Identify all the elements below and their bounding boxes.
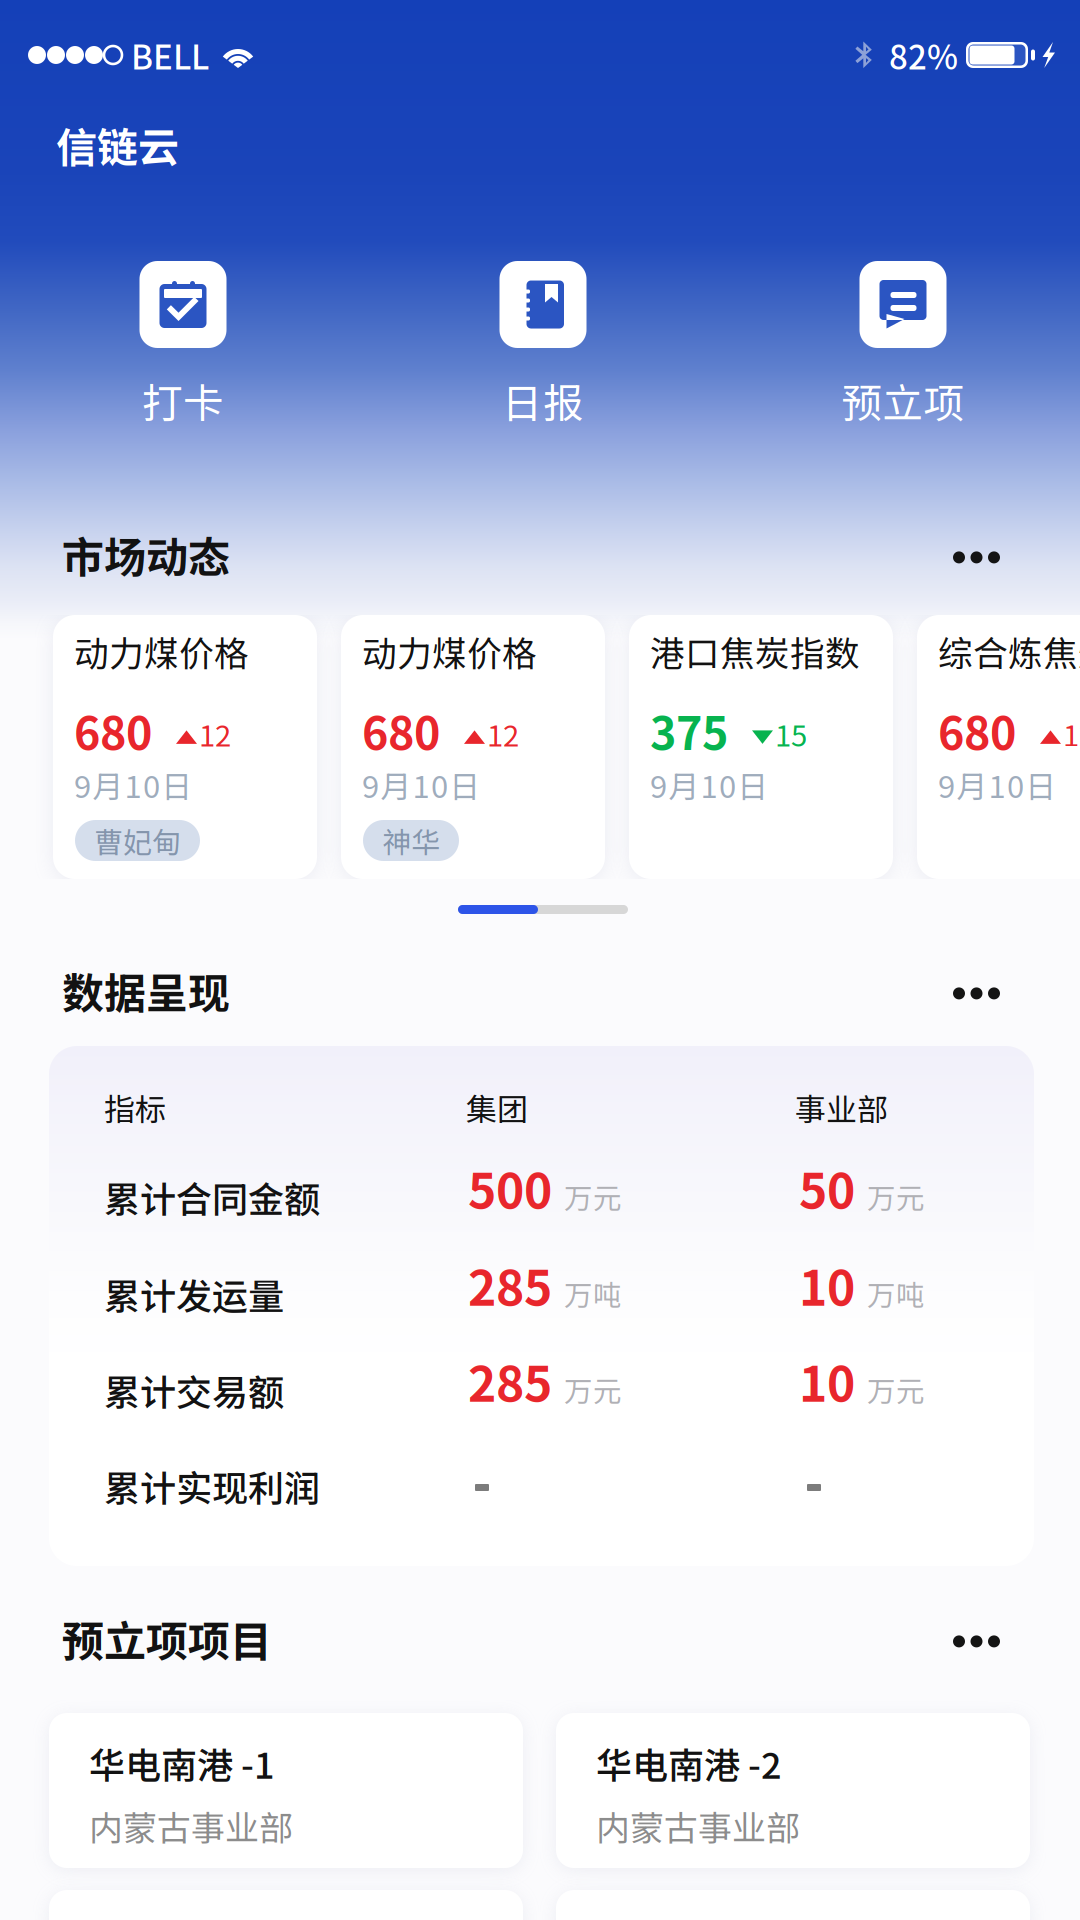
staticText: 285 [468, 1346, 552, 1415]
staticText: 9月10日 [650, 762, 768, 807]
staticText: 万吨 [867, 1273, 925, 1314]
staticText: 累计合同金额 [104, 1171, 320, 1223]
staticText: 神华 [382, 819, 440, 861]
button[interactable]: 综合炼焦煤指数 [917, 615, 1080, 879]
staticText: 万元 [564, 1369, 622, 1410]
staticText: 动力煤价格 [74, 626, 249, 676]
button[interactable]: 动力煤价格 [341, 615, 605, 879]
staticText: 680 [938, 698, 1016, 763]
button[interactable]: 更多 [885, 525, 1000, 583]
staticText: 10 [799, 1346, 855, 1415]
staticText: 15 [775, 712, 807, 755]
staticText: 打卡 [142, 371, 224, 430]
staticText: 9月10日 [74, 762, 192, 807]
button[interactable]: 日报 [363, 261, 723, 1920]
staticText: 累计实现利润 [104, 1460, 320, 1512]
button[interactable]: 华电南港 -1 [49, 1713, 523, 1868]
button[interactable]: 港口焦炭指数 [629, 615, 893, 879]
staticText: 10 [799, 1250, 855, 1319]
staticText: 680 [362, 698, 440, 763]
staticText: 综合炼焦煤指数 [938, 626, 1080, 676]
staticText: 指标 [104, 1085, 166, 1130]
staticText: 万元 [867, 1176, 925, 1217]
staticText: 万元 [867, 1369, 925, 1410]
button[interactable]: 预立项 [723, 261, 1080, 1920]
staticText: 12 [1063, 712, 1080, 755]
staticText: 市场动态 [62, 524, 230, 585]
staticText: 动力煤价格 [362, 626, 537, 676]
staticText: 12 [487, 712, 519, 755]
button[interactable]: 打卡 [3, 261, 363, 1920]
staticText: 内蒙古事业部 [89, 1801, 293, 1850]
staticText: 华电南港 -2 [596, 1737, 782, 1789]
staticText: 内蒙古事业部 [596, 1801, 800, 1850]
staticText: 12 [199, 712, 231, 755]
staticText: 375 [650, 698, 728, 763]
staticText: 285 [468, 1250, 552, 1319]
staticText: 事业部 [795, 1085, 888, 1130]
button[interactable]: 动力煤价格 [53, 615, 317, 879]
button[interactable]: 更多 [885, 961, 1000, 1019]
staticText: 港口焦炭指数 [650, 626, 860, 676]
staticText: 9月10日 [362, 762, 480, 807]
staticText: 万吨 [564, 1273, 622, 1314]
staticText: 数据呈现 [62, 960, 230, 1021]
staticText: 信链云 [56, 115, 179, 174]
staticText: 累计发运量 [104, 1268, 284, 1320]
staticText: 500 [468, 1153, 552, 1222]
staticText: 华电南港 -1 [89, 1737, 275, 1789]
staticText: 累计交易额 [104, 1364, 284, 1416]
button[interactable]: 更多 [885, 1609, 1000, 1667]
staticText: 82% [889, 31, 958, 79]
staticText: 预立项 [841, 371, 964, 430]
button[interactable]: 华电南港 -2 [556, 1713, 1030, 1868]
staticText: 曹妃甸 [94, 819, 181, 861]
staticText: 9月10日 [938, 762, 1056, 807]
staticText: BELL [131, 31, 209, 79]
staticText: 集团 [466, 1085, 528, 1130]
staticText: 预立项项目 [62, 1608, 272, 1669]
staticText: 日报 [502, 371, 584, 430]
staticText: 50 [799, 1153, 855, 1222]
staticText: 680 [74, 698, 152, 763]
staticText: 万元 [564, 1176, 622, 1217]
